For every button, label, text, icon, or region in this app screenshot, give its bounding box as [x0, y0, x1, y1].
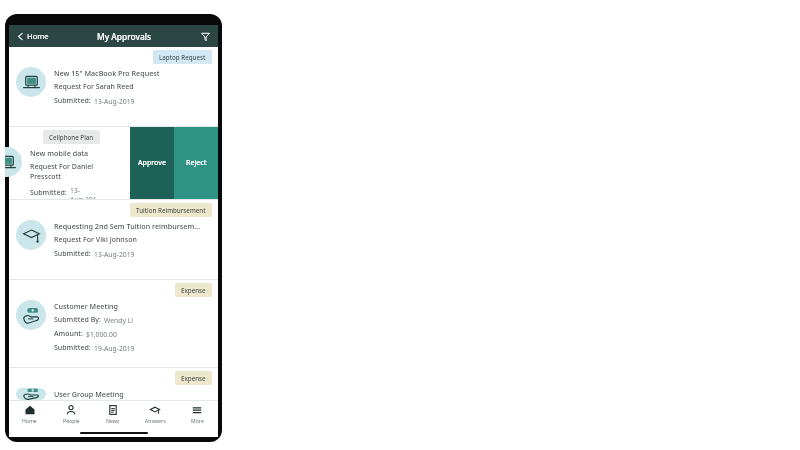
staticText: Request For Viki Johnson	[54, 235, 137, 245]
staticText: Submitted By:	[54, 315, 101, 325]
button[interactable]: Reject	[174, 127, 218, 199]
staticText: Submitted:	[54, 343, 91, 353]
button[interactable]: Expense	[9, 368, 218, 400]
staticText: New mobile data plan request	[30, 148, 100, 158]
staticText: Customer Meeting	[54, 301, 119, 311]
staticText: Requesting 2nd Sem Tuition reimbursem…	[54, 221, 201, 231]
button[interactable]: News	[92, 401, 134, 428]
staticText: User Group Meeting	[54, 389, 124, 399]
button[interactable]: Cellphone Plan	[5, 127, 106, 199]
staticText: 13-Aug-2019	[70, 186, 100, 199]
staticText: Submitted:	[30, 188, 67, 198]
button[interactable]: Laptop Request	[9, 47, 218, 126]
staticText: People	[63, 417, 80, 424]
staticText: More	[191, 417, 204, 424]
button[interactable]: Home	[9, 401, 50, 428]
button[interactable]: Expense	[9, 280, 218, 367]
button[interactable]: Tuition Reimbursement	[9, 200, 218, 279]
staticText: Home	[27, 31, 49, 41]
staticText: 13-Aug-2019	[94, 250, 135, 259]
staticText: Tuition Reimbursement	[136, 206, 206, 214]
staticText: 13-Aug-2019	[94, 97, 135, 106]
button[interactable]: More	[176, 401, 218, 428]
button[interactable]: Home	[15, 28, 51, 44]
button[interactable]: People	[50, 401, 92, 428]
staticText: Reject	[186, 158, 207, 168]
button[interactable]: Answers	[134, 401, 176, 428]
staticText: Answers	[145, 417, 166, 424]
staticText: Submitted:	[54, 249, 91, 259]
staticText: New 15" MacBook Pro Request	[54, 68, 160, 78]
staticText: Home	[22, 417, 37, 424]
staticText: Cellphone Plan	[49, 133, 94, 141]
staticText: Expense	[181, 374, 206, 382]
button[interactable]: Filter	[198, 29, 212, 43]
staticText: My Approvals	[97, 31, 152, 42]
button[interactable]: Approve	[130, 127, 174, 199]
staticText: Submitted:	[54, 96, 91, 106]
staticText: Wendy Li	[104, 316, 133, 325]
staticText: Request For Sarah Reed	[54, 82, 134, 92]
staticText: Approve	[138, 158, 166, 168]
staticText: Amount:	[54, 329, 83, 339]
staticText: $1,000.00	[86, 330, 117, 339]
staticText: Expense	[181, 286, 206, 294]
staticText: 19-Aug-2019	[94, 344, 135, 353]
staticText: Request For Daniel Presscott	[30, 162, 100, 182]
staticText: Laptop Request	[159, 53, 206, 61]
staticText: News	[106, 417, 120, 424]
